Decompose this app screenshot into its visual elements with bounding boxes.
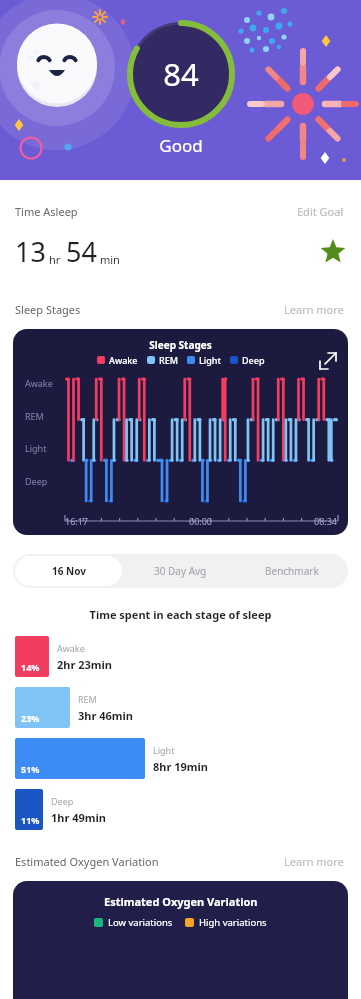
button[interactable]: 14% (15, 636, 346, 677)
staticText: 54 (66, 233, 97, 270)
staticText: Light (199, 354, 221, 366)
staticText: Awake (57, 642, 85, 654)
button[interactable]: 11% (15, 789, 346, 830)
staticText: REM (159, 354, 178, 366)
button[interactable]: 16 Nov (15, 556, 122, 586)
staticText: Estimated Oxygen Variation (104, 894, 258, 909)
staticText: Benchmark (265, 564, 319, 578)
staticText: Edit Goal (297, 204, 344, 219)
button[interactable]: Learn more (282, 852, 346, 871)
button[interactable]: 23% (15, 687, 346, 728)
staticText: 16 Nov (52, 564, 86, 578)
staticText: hr (49, 252, 61, 267)
staticText: 30 Day Avg (154, 564, 207, 578)
staticText: 23% (21, 712, 40, 724)
staticText: 84 (121, 53, 241, 95)
button[interactable]: Benchmark (236, 554, 348, 588)
button[interactable]: Estimated Oxygen Variation (13, 881, 348, 999)
staticText: Good (121, 134, 241, 157)
button[interactable]: Sleep Stages (13, 329, 348, 535)
staticText: 11% (21, 814, 40, 826)
staticText: 3hr 46min (78, 708, 133, 723)
button[interactable]: Expand chart (316, 349, 340, 373)
button[interactable]: Edit Goal (295, 202, 346, 221)
button[interactable]: 30 Day Avg (124, 554, 236, 588)
staticText: min (100, 252, 120, 267)
staticText: Deep (51, 795, 74, 807)
staticText: REM (25, 410, 44, 422)
button[interactable]: Learn more (282, 300, 346, 319)
staticText: 2hr 23min (57, 657, 112, 672)
staticText: 51% (21, 763, 40, 775)
staticText: REM (78, 693, 97, 705)
staticText: Learn more (284, 302, 344, 317)
staticText: 1hr 49min (51, 810, 106, 825)
staticText: Estimated Oxygen Variation (15, 854, 282, 869)
staticText: Deep (242, 354, 265, 366)
staticText: Learn more (284, 854, 344, 869)
staticText: Awake (25, 377, 53, 389)
staticText: Awake (109, 354, 138, 366)
staticText: Light (25, 442, 47, 454)
staticText: Sleep Stages (13, 338, 348, 352)
staticText: 08:34 (314, 515, 338, 527)
staticText: 00:00 (189, 515, 213, 527)
staticText: 8hr 19min (153, 759, 208, 774)
staticText: Low variations (108, 916, 173, 929)
staticText: Light (153, 744, 175, 756)
staticText: 13 (15, 233, 46, 270)
staticText: Time spent in each stage of sleep (0, 607, 361, 622)
staticText: High variations (199, 916, 267, 929)
staticText: Sleep Stages (15, 302, 282, 317)
staticText: 16:17 (65, 515, 89, 527)
staticText: 14% (21, 661, 40, 673)
staticText: Time Asleep (15, 204, 295, 219)
staticText: Deep (25, 475, 48, 487)
button[interactable]: 51% (15, 738, 346, 779)
